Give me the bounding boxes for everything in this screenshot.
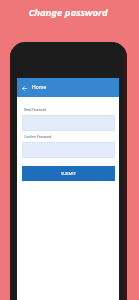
- staticText: Change password: [28, 6, 108, 19]
- button[interactable]: SUBMIT: [22, 166, 115, 181]
- staticText: Confirm Password: [24, 134, 52, 139]
- staticText: New Password: [24, 107, 46, 112]
- staticText: Home: [32, 84, 47, 91]
- staticText: SUBMIT: [61, 171, 76, 176]
- button[interactable]: Back: [19, 83, 29, 93]
